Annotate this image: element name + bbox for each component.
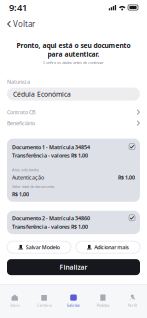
button[interactable]: Cartório [29, 285, 59, 318]
button[interactable]: Início [0, 285, 29, 318]
staticText: Cartório [37, 303, 52, 308]
button[interactable]: Solicitar [59, 285, 88, 318]
staticText: Pronto, aqui está o seu documento [16, 41, 130, 50]
staticText: Transferência - valores R$ 1,00 [12, 152, 88, 159]
staticText: Contrato CB [7, 109, 35, 116]
staticText: Solicitar [66, 303, 80, 308]
staticText: Cédula Económica [13, 90, 71, 99]
button[interactable]: Adicionar mais [76, 241, 140, 253]
staticText: Atos solicitados [12, 167, 39, 172]
button[interactable]: Beneficiário [7, 118, 140, 129]
staticText: Perfil [128, 303, 137, 308]
staticText: Adicionar mais [94, 244, 129, 251]
staticText: Documento 2 - Matrícula 34860 [12, 215, 90, 222]
staticText: Valor total do documento [12, 184, 54, 189]
button[interactable]: Contrato CB [7, 107, 140, 118]
button[interactable]: Pedidos [88, 285, 118, 318]
staticText: para autenticar. [47, 50, 99, 59]
button[interactable]: Finalizar [7, 259, 140, 275]
staticText: Natureza [7, 78, 30, 85]
button[interactable]: Salvar Modelo [7, 241, 71, 253]
staticText: R$ 1,00 [118, 174, 135, 181]
staticText: Início [10, 303, 19, 308]
staticText: Voltar [13, 19, 35, 29]
staticText: Pedidos [96, 303, 109, 308]
staticText: Finalizar [59, 263, 87, 272]
staticText: Documento 1 - Matrícula 34854 [12, 144, 90, 151]
staticText: Autenticação [12, 174, 44, 181]
staticText: R$ 1,00 [12, 191, 29, 198]
staticText: Salvar Modelo [26, 244, 60, 251]
staticText: 9:41 [9, 1, 27, 14]
staticText: Transferência - valores R$ 1,00 [12, 223, 88, 230]
staticText: Confira os dados antes de continuar [43, 60, 104, 65]
button[interactable]: Perfil [118, 285, 147, 318]
button[interactable]: Voltar [3, 16, 39, 32]
button[interactable]: Cédula Económica [7, 88, 140, 101]
staticText: Beneficiário [7, 120, 35, 127]
